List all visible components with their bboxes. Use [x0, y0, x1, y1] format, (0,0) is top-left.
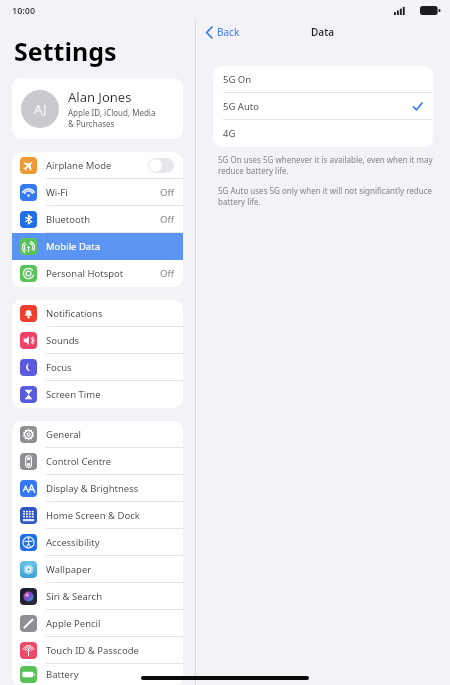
staticText: Bluetooth: [46, 213, 91, 226]
staticText: Back: [217, 25, 240, 39]
button[interactable]: Display & Brightness: [12, 475, 183, 502]
staticText: Battery: [46, 668, 79, 681]
staticText: Wallpaper: [46, 563, 92, 576]
staticText: Notifications: [46, 307, 103, 320]
staticText: 4G: [223, 127, 236, 140]
button[interactable]: AJ: [12, 78, 183, 139]
staticText: Control Centre: [46, 455, 112, 468]
button[interactable]: Focus: [12, 354, 183, 381]
staticText: Focus: [46, 361, 72, 374]
staticText: Display & Brightness: [46, 482, 139, 495]
staticText: Airplane Mode: [46, 159, 112, 172]
staticText: Apple ID, iCloud, Media & Purchases: [68, 107, 156, 129]
button[interactable]: Screen Time: [12, 381, 183, 408]
staticText: Accessibility: [46, 536, 100, 549]
staticText: AJ: [34, 100, 47, 118]
button[interactable]: Wi-Fi: [12, 179, 183, 206]
button[interactable]: General: [12, 421, 183, 448]
button[interactable]: Wallpaper: [12, 556, 183, 583]
button[interactable]: Notifications: [12, 300, 183, 327]
button[interactable]: Touch ID & Passcode: [12, 637, 183, 664]
button[interactable]: Battery: [12, 664, 183, 685]
staticText: Off: [160, 213, 174, 226]
button[interactable]: Apple Pencil: [12, 610, 183, 637]
button[interactable]: Bluetooth: [12, 206, 183, 233]
button[interactable]: Airplane Mode: [12, 152, 183, 179]
staticText: 5G Auto uses 5G only when it will not si…: [218, 185, 433, 207]
button[interactable]: Personal Hotspot: [12, 260, 183, 287]
button[interactable]: Back: [202, 23, 244, 41]
staticText: Sounds: [46, 334, 80, 347]
staticText: Data: [311, 25, 335, 39]
staticText: Alan Jones: [68, 88, 132, 106]
staticText: General: [46, 428, 82, 441]
staticText: Personal Hotspot: [46, 267, 124, 280]
staticText: Apple Pencil: [46, 617, 101, 630]
button[interactable]: 4G: [213, 120, 433, 147]
button[interactable]: Mobile Data: [12, 233, 183, 260]
button[interactable]: Airplane Mode toggle: [148, 158, 174, 173]
staticText: Off: [160, 267, 174, 280]
staticText: Touch ID & Passcode: [46, 644, 139, 657]
staticText: Wi-Fi: [46, 186, 68, 199]
staticText: 5G On: [223, 73, 252, 86]
button[interactable]: Control Centre: [12, 448, 183, 475]
staticText: 10:00: [12, 4, 36, 16]
button[interactable]: Accessibility: [12, 529, 183, 556]
staticText: Off: [160, 186, 174, 199]
staticText: Home Screen & Dock: [46, 509, 140, 522]
staticText: 5G On uses 5G whenever it is available, …: [218, 154, 433, 176]
staticText: Siri & Search: [46, 590, 103, 603]
staticText: Screen Time: [46, 388, 101, 401]
staticText: 5G Auto: [223, 100, 259, 113]
staticText: Settings: [14, 34, 117, 68]
button[interactable]: Home Screen & Dock: [12, 502, 183, 529]
staticText: Mobile Data: [46, 240, 100, 253]
button[interactable]: 5G Auto: [213, 93, 433, 120]
button[interactable]: Siri & Search: [12, 583, 183, 610]
button[interactable]: Sounds: [12, 327, 183, 354]
button[interactable]: 5G On: [213, 66, 433, 93]
